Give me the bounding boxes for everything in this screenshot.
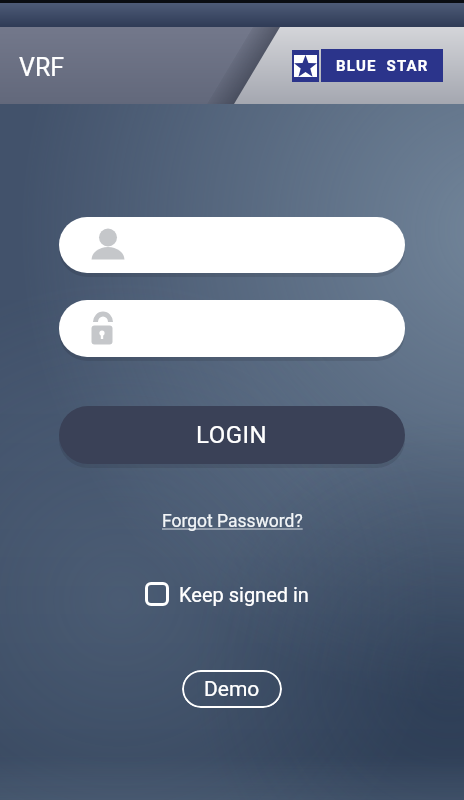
button[interactable]: Forgot Password? xyxy=(0,505,464,537)
button[interactable]: Demo xyxy=(182,670,282,708)
button[interactable] xyxy=(59,217,405,273)
staticText: Forgot Password? xyxy=(162,511,303,532)
staticText: BLUE STAR xyxy=(336,57,429,75)
staticText: VRF xyxy=(19,53,65,82)
staticText: LOGIN xyxy=(196,421,268,449)
button[interactable]: LOGIN xyxy=(59,406,405,464)
button[interactable] xyxy=(59,300,405,357)
staticText: Keep signed in xyxy=(179,583,309,606)
staticText: Demo xyxy=(204,677,260,702)
button[interactable]: Keep signed in xyxy=(145,582,309,606)
